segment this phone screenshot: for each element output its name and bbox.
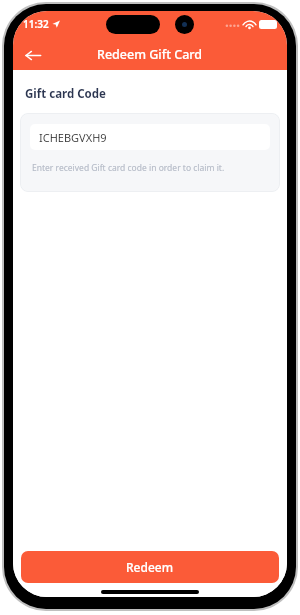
staticText: Redeem [126,559,174,575]
button[interactable]: ICHEBGVXH9 [30,124,270,150]
button[interactable]: Redeem [21,551,279,583]
staticText: ICHEBGVXH9 [39,130,107,145]
staticText: 11:32 [23,17,49,31]
staticText: Redeem Gift Card [97,46,203,63]
button[interactable]: Back [18,40,48,70]
staticText: Gift card Code [25,86,106,102]
staticText: Enter received Gift card code in order t… [32,162,225,174]
